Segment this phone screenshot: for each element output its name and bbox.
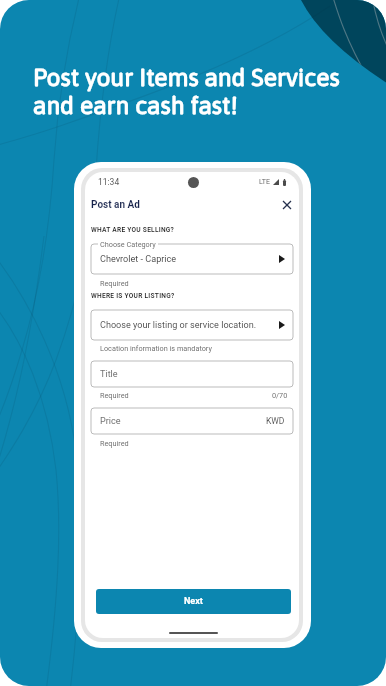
button[interactable]: Choose your listing or service location. bbox=[91, 310, 293, 340]
staticText: Chevrolet - Caprice bbox=[100, 254, 177, 265]
staticText: LTE bbox=[259, 178, 270, 186]
staticText: Required bbox=[100, 391, 129, 400]
button[interactable]: Price bbox=[91, 408, 293, 434]
staticText: and earn cash fast! bbox=[33, 91, 238, 119]
staticText: WHAT ARE YOU SELLING? bbox=[91, 226, 175, 234]
button[interactable]: Chevrolet - Caprice bbox=[91, 244, 293, 274]
staticText: Location information is mandatory bbox=[100, 344, 212, 353]
staticText: KWD bbox=[266, 416, 285, 426]
staticText: Next bbox=[184, 596, 203, 607]
staticText: WHERE IS YOUR LISTING? bbox=[91, 292, 175, 300]
staticText: Price bbox=[100, 416, 121, 427]
staticText: Required bbox=[100, 279, 129, 288]
staticText: 0/70 bbox=[272, 391, 288, 400]
staticText: Post an Ad bbox=[91, 199, 140, 211]
staticText: Post your Items and Services bbox=[33, 63, 340, 91]
staticText: Choose Category bbox=[100, 240, 156, 249]
staticText: Required bbox=[100, 439, 129, 448]
staticText: Choose your listing or service location. bbox=[100, 320, 257, 331]
button[interactable]: Next bbox=[96, 589, 291, 614]
staticText: 11:34 bbox=[98, 177, 120, 187]
staticText: Title bbox=[100, 369, 118, 380]
button[interactable]: Title bbox=[91, 361, 293, 387]
button[interactable]: Close bbox=[278, 196, 295, 213]
